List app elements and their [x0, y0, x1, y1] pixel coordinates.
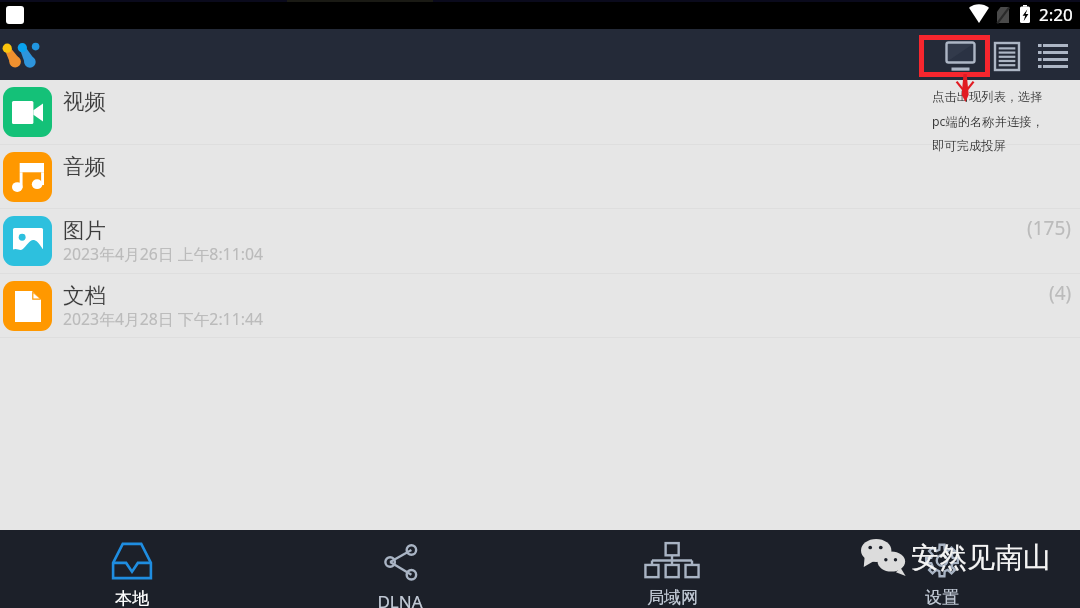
staticText: 即可完成投屏	[932, 138, 1006, 153]
button[interactable]: 图片	[0, 209, 1080, 274]
button[interactable]: 本地	[65, 530, 199, 608]
button[interactable]: 列表视图 List view	[1029, 35, 1077, 77]
button[interactable]: 音频	[0, 145, 1080, 209]
staticText: 2:20	[1039, 3, 1073, 26]
staticText: 2023年4月26日 上午8:11:04	[63, 243, 263, 265]
staticText: (4)	[1049, 280, 1072, 306]
staticText: 局域网	[647, 587, 698, 608]
button[interactable]: 文档	[0, 274, 1080, 338]
button[interactable]: 设置	[875, 530, 1009, 608]
staticText: DLNA	[377, 590, 423, 608]
button[interactable]: DLNA	[333, 530, 467, 608]
staticText: pc端的名称并连接，	[932, 113, 1044, 130]
staticText: 视频	[63, 88, 106, 115]
staticText: 安然见南山	[911, 540, 1051, 575]
staticText: 2023年4月28日 下午2:11:44	[63, 308, 263, 330]
staticText: 图片	[63, 217, 106, 244]
button[interactable]: 局域网	[605, 530, 739, 608]
button[interactable]: 投屏 Cast to PC	[919, 35, 990, 77]
button[interactable]: 文档视图 Document view	[990, 35, 1024, 77]
staticText: 设置	[925, 587, 959, 608]
staticText: (175)	[1027, 215, 1072, 241]
staticText: 文档	[63, 282, 106, 309]
staticText: 点击出现列表，选择	[932, 89, 1043, 104]
staticText: 本地	[115, 588, 149, 608]
button[interactable]: 视频	[0, 80, 1080, 145]
staticText: 音频	[63, 153, 106, 180]
